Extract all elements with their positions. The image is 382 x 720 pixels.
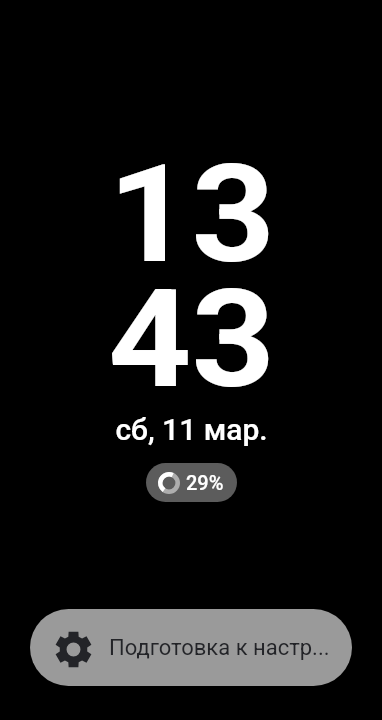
staticText: 43 <box>107 260 275 419</box>
staticText: сб, 11 мар. <box>115 412 268 447</box>
staticText: 29% <box>186 471 224 494</box>
staticText: 13 <box>107 135 275 294</box>
button[interactable]: Подготовка к настр... <box>30 609 352 686</box>
staticText: Подготовка к настр... <box>109 635 330 661</box>
button[interactable]: Battery 29 percent <box>146 463 237 502</box>
